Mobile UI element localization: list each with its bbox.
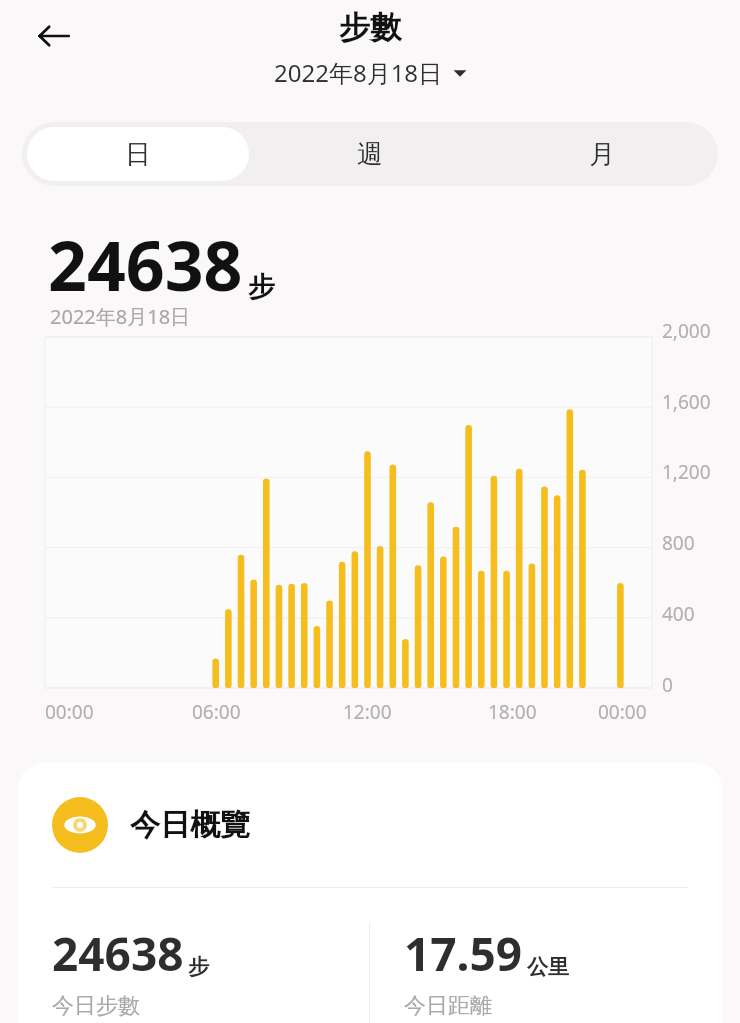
- staticText: 今日步數: [52, 992, 140, 1020]
- staticText: 400: [662, 601, 695, 627]
- staticText: 17.59: [404, 922, 523, 985]
- button[interactable]: 月: [491, 127, 713, 181]
- staticText: 2022年8月18日: [274, 56, 443, 89]
- staticText: 18:00: [488, 699, 537, 725]
- button[interactable]: Back: [26, 8, 82, 64]
- staticText: 今日概覽: [130, 806, 250, 844]
- staticText: 今日距離: [404, 992, 492, 1020]
- staticText: 24638: [48, 218, 243, 311]
- button[interactable]: 今日概覽: [18, 763, 722, 887]
- staticText: 週: [357, 138, 383, 171]
- staticText: 步: [248, 270, 275, 304]
- staticText: 800: [662, 530, 695, 556]
- staticText: 2,000: [662, 318, 711, 344]
- staticText: 月: [589, 138, 615, 171]
- staticText: 00:00: [45, 699, 94, 725]
- staticText: 日: [125, 138, 151, 171]
- button[interactable]: 2022年8月18日: [268, 54, 473, 91]
- staticText: 公里: [527, 954, 569, 980]
- staticText: 1,200: [662, 459, 711, 485]
- button[interactable]: 週: [259, 127, 481, 181]
- staticText: 步: [188, 954, 209, 980]
- staticText: 1,600: [662, 389, 711, 415]
- staticText: 00:00: [598, 699, 647, 725]
- staticText: 2022年8月18日: [50, 303, 191, 330]
- staticText: 12:00: [343, 699, 392, 725]
- staticText: 24638: [52, 922, 184, 985]
- staticText: 步數: [339, 8, 401, 47]
- staticText: 06:00: [192, 699, 241, 725]
- button[interactable]: 日: [27, 127, 249, 181]
- staticText: 0: [662, 672, 673, 698]
